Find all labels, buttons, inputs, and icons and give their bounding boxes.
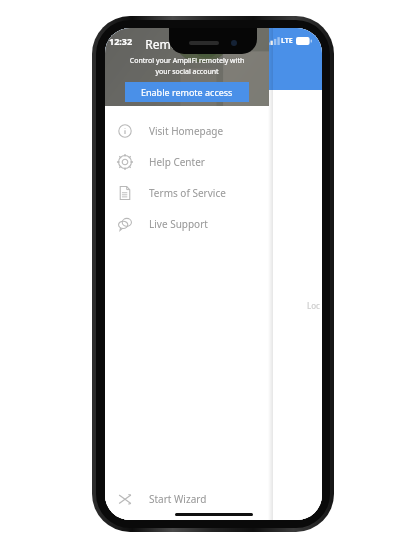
button[interactable]: Terms of Service (105, 177, 269, 208)
staticText: Visit Homepage (149, 124, 224, 138)
staticText: Live Support (149, 217, 208, 231)
button[interactable]: Live Support (105, 208, 269, 239)
staticText: Remote Access (145, 36, 230, 52)
staticText: Enable remote access (141, 86, 233, 98)
button[interactable]: Visit Homepage (105, 115, 269, 146)
button[interactable]: Start Wizard (105, 483, 269, 514)
button[interactable]: Enable remote access (125, 82, 249, 102)
staticText: 12:32 (109, 35, 133, 47)
button[interactable]: Help Center (105, 146, 269, 177)
staticText: LTE (281, 36, 293, 46)
staticText: Terms of Service (149, 186, 226, 200)
staticText: Loc (307, 300, 320, 311)
staticText: Help Center (149, 155, 205, 169)
button[interactable]: Open navigation menu (113, 58, 139, 84)
staticText: Start Wizard (149, 492, 207, 506)
staticText: Control your AmpliFi remotely with your … (127, 56, 247, 76)
